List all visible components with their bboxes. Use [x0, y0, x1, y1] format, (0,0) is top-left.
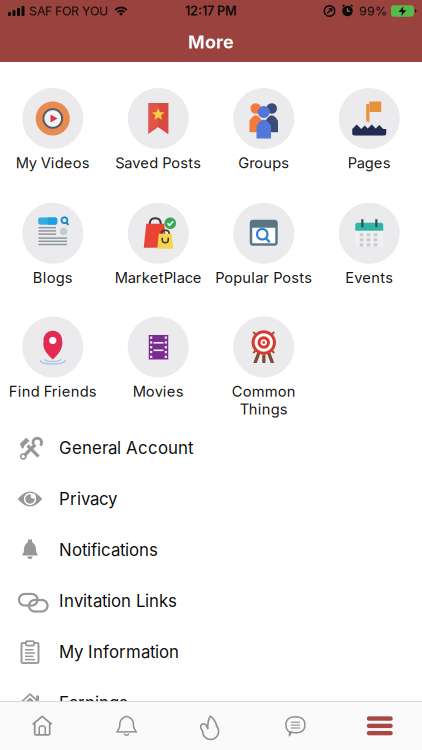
staticText: SAF FOR YOU	[29, 4, 108, 18]
button[interactable]: More	[338, 702, 422, 750]
staticText: MarketPlace	[115, 269, 202, 286]
staticText: Events	[345, 269, 393, 286]
staticText: 12:17 PM	[185, 3, 237, 19]
staticText: My Information	[59, 642, 179, 662]
button[interactable]: Messages	[253, 702, 338, 750]
staticText: 99%	[359, 4, 387, 18]
staticText: Invitation Links	[59, 591, 177, 611]
button[interactable]: My Information	[0, 626, 422, 677]
staticText: General Account	[59, 438, 193, 458]
staticText: Saved Posts	[115, 154, 201, 172]
staticText: Earnings	[59, 693, 128, 713]
button[interactable]: Invitation Links	[0, 575, 422, 626]
button[interactable]: Notifications	[84, 702, 169, 750]
staticText: Find Friends	[9, 382, 97, 400]
button[interactable]: Groups	[211, 88, 316, 172]
staticText: Popular Posts	[215, 269, 312, 286]
staticText: Things	[240, 400, 288, 418]
button[interactable]: Trending	[169, 702, 253, 750]
staticText: Pages	[348, 154, 391, 172]
staticText: Blogs	[33, 269, 73, 286]
staticText: My Videos	[16, 154, 90, 172]
button[interactable]: Earnings	[0, 677, 422, 728]
button[interactable]: Home	[0, 702, 84, 750]
button[interactable]: Popular Posts	[211, 203, 316, 286]
button[interactable]: Privacy	[0, 473, 422, 524]
staticText: Movies	[133, 382, 184, 400]
button[interactable]: General Account	[0, 422, 422, 473]
staticText: Notifications	[59, 540, 158, 560]
button[interactable]: Find Friends	[0, 316, 105, 400]
button[interactable]: Pages	[316, 88, 422, 172]
button[interactable]: MarketPlace	[105, 203, 211, 286]
button[interactable]: Common	[211, 316, 316, 418]
staticText: More	[188, 31, 234, 53]
button[interactable]: Notifications	[0, 524, 422, 575]
button[interactable]: Events	[316, 203, 422, 286]
button[interactable]: Saved Posts	[105, 88, 211, 172]
button[interactable]: My Videos	[0, 88, 105, 172]
staticText: Common	[232, 382, 296, 400]
button[interactable]: Blogs	[0, 203, 105, 286]
button[interactable]: Movies	[105, 316, 211, 400]
staticText: Groups	[238, 154, 289, 172]
staticText: Privacy	[59, 489, 117, 509]
